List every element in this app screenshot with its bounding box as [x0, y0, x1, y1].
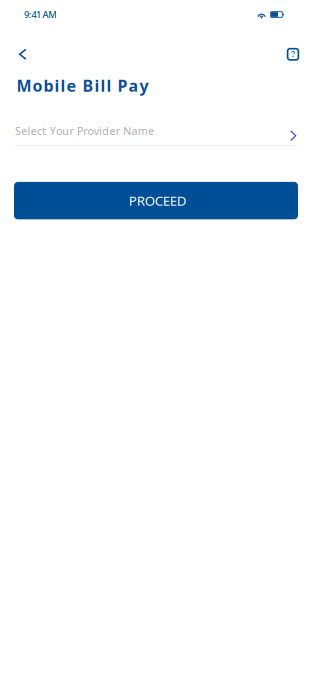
button[interactable]: Select Your Provider Name — [0, 123, 312, 146]
staticText: Mobile Bill Pay — [16, 75, 148, 96]
staticText: Select Your Provider Name — [15, 124, 154, 138]
staticText: 9:41 AM — [24, 8, 57, 21]
staticText: PROCEED — [129, 192, 187, 209]
button[interactable]: Help — [278, 39, 308, 69]
button[interactable]: PROCEED — [14, 182, 298, 219]
button[interactable]: Back — [7, 39, 37, 69]
